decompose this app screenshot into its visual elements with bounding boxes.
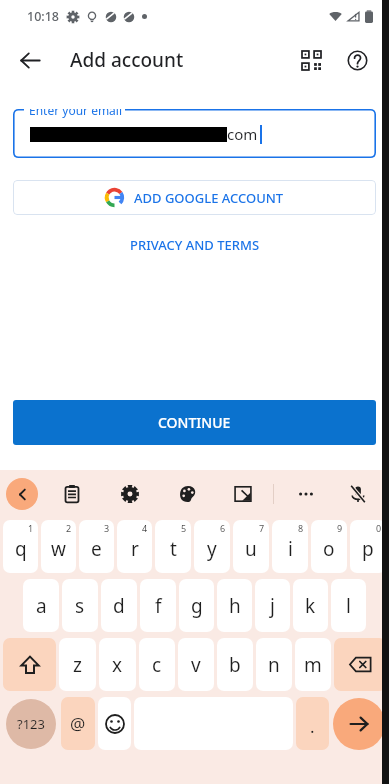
staticText: . [310, 715, 315, 738]
button[interactable]: c [139, 638, 175, 691]
button[interactable]: More options [289, 477, 323, 511]
staticText: 8 [298, 522, 304, 534]
staticText: Enter your email [29, 109, 123, 118]
button[interactable]: t [155, 520, 191, 573]
staticText: w [51, 536, 66, 562]
staticText: 3 [104, 522, 110, 534]
staticText: e [91, 536, 102, 562]
staticText: u [245, 536, 257, 562]
staticText: s [75, 593, 85, 619]
staticText: com [227, 124, 258, 144]
staticText: CONTINUE [158, 413, 231, 432]
staticText: o [323, 536, 335, 562]
button[interactable]: Backspace [334, 638, 386, 691]
staticText: m [304, 652, 322, 678]
button[interactable]: n [256, 638, 292, 691]
staticText: 6 [220, 522, 226, 534]
button[interactable]: Enter [333, 698, 385, 750]
button[interactable]: d [101, 579, 137, 632]
button[interactable]: s [62, 579, 98, 632]
button[interactable]: PRIVACY AND TERMS [120, 231, 270, 259]
button[interactable]: Resize keyboard [226, 477, 260, 511]
button[interactable]: u [233, 520, 269, 573]
staticText: g [191, 593, 203, 619]
staticText: a [36, 593, 47, 619]
button[interactable]: b [217, 638, 253, 691]
staticText: @ [70, 712, 86, 735]
button[interactable]: j [255, 579, 290, 632]
staticText: d [113, 593, 125, 619]
staticText: y [207, 536, 217, 562]
button[interactable]: l [331, 579, 366, 632]
button[interactable]: a [23, 579, 59, 632]
staticText: Add account [70, 47, 184, 73]
staticText: PRIVACY AND TERMS [130, 236, 260, 254]
staticText: t [170, 536, 177, 562]
button[interactable]: m [295, 638, 331, 691]
button[interactable]: Clipboard [55, 477, 89, 511]
staticText: v [191, 652, 201, 678]
button[interactable]: Shift [3, 638, 56, 691]
staticText: n [268, 652, 280, 678]
staticText: 0 [376, 522, 382, 534]
staticText: 4 [142, 522, 148, 534]
staticText: 2 [66, 522, 72, 534]
button[interactable]: Settings [113, 477, 147, 511]
staticText: c [152, 652, 162, 678]
button[interactable]: Scan QR code [291, 40, 331, 80]
button[interactable]: z [59, 638, 96, 691]
button[interactable]: Voice input off [341, 477, 375, 511]
staticText: ADD GOOGLE ACCOUNT [134, 189, 284, 207]
staticText: z [73, 652, 82, 678]
button[interactable]: Emoji [98, 697, 131, 750]
button[interactable]: p [350, 520, 386, 573]
staticText: 1 [28, 522, 34, 534]
staticText: p [362, 536, 374, 562]
button[interactable]: e [79, 520, 114, 573]
button[interactable]: ?123 [6, 699, 56, 749]
button[interactable]: w [41, 520, 76, 573]
button[interactable]: @ [61, 697, 95, 750]
button[interactable]: . [296, 697, 329, 750]
staticText: 9 [337, 522, 343, 534]
staticText: ?123 [17, 715, 45, 733]
button[interactable]: q [3, 520, 38, 573]
button[interactable]: Help [337, 40, 377, 80]
staticText: 7 [259, 522, 265, 534]
button[interactable]: Back [8, 38, 52, 82]
staticText: 5 [181, 522, 187, 534]
staticText: b [229, 652, 241, 678]
staticText: i [288, 536, 293, 562]
staticText: j [270, 593, 275, 619]
button[interactable]: i [272, 520, 308, 573]
button[interactable]: g [179, 579, 214, 632]
staticText: h [229, 593, 241, 619]
button[interactable]: Themes [171, 477, 205, 511]
button[interactable]: o [311, 520, 347, 573]
staticText: 10:18 [27, 8, 60, 25]
button[interactable]: r [117, 520, 152, 573]
button[interactable]: v [178, 638, 214, 691]
staticText: f [155, 593, 162, 619]
button[interactable]: y [194, 520, 230, 573]
staticText: l [346, 593, 351, 619]
staticText: k [305, 593, 316, 619]
staticText: r [131, 536, 139, 562]
button[interactable]: h [217, 579, 252, 632]
button[interactable]: CONTINUE [13, 400, 376, 445]
button[interactable]: k [293, 579, 328, 632]
button[interactable]: Previous [6, 478, 38, 510]
staticText: x [112, 652, 123, 678]
button[interactable]: Enter your email [13, 109, 376, 158]
button[interactable]: ADD GOOGLE ACCOUNT [13, 180, 376, 215]
staticText: q [15, 536, 27, 562]
button[interactable]: x [99, 638, 136, 691]
button[interactable]: f [140, 579, 176, 632]
